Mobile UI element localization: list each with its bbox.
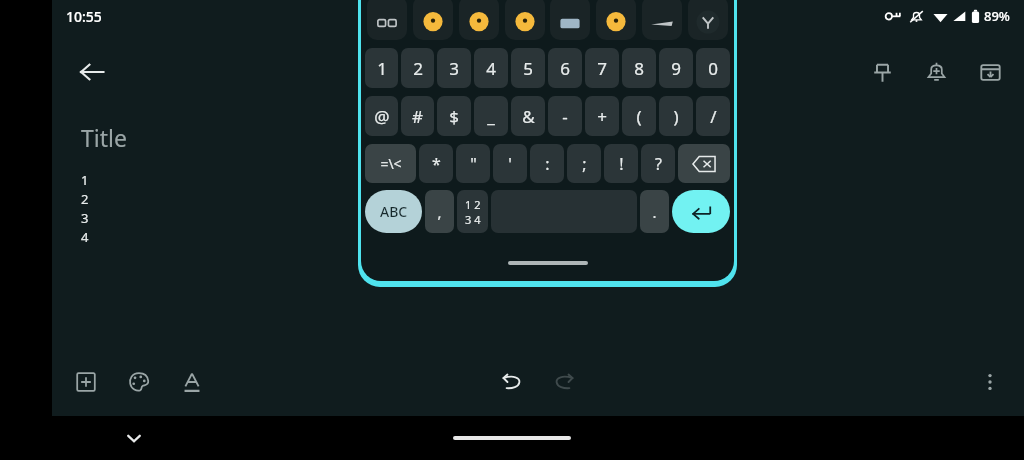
staticText: &: [522, 105, 535, 128]
button[interactable]: 6: [548, 48, 582, 88]
staticText: ;: [582, 153, 587, 175]
staticText: 5: [523, 57, 533, 80]
staticText: 8: [634, 57, 644, 80]
staticText: #: [412, 105, 423, 128]
button[interactable]: Add: [64, 360, 108, 404]
button[interactable]: Emoji suggestion: [642, 0, 682, 40]
button[interactable]: More options: [968, 360, 1012, 404]
button[interactable]: 0: [696, 48, 730, 88]
staticText: (: [636, 105, 642, 128]
button[interactable]: 1: [365, 48, 398, 88]
staticText: _: [487, 105, 495, 128]
staticText: +: [597, 105, 607, 128]
staticText: 6: [560, 57, 570, 80]
button[interactable]: 2: [401, 48, 434, 88]
staticText: 1 2: [465, 197, 481, 212]
button[interactable]: +: [585, 96, 619, 136]
button[interactable]: 3: [437, 48, 471, 88]
button[interactable]: Pin: [858, 48, 906, 96]
button[interactable]: Change color: [117, 360, 161, 404]
button[interactable]: ): [659, 96, 693, 136]
button[interactable]: _: [474, 96, 508, 136]
staticText: @: [374, 105, 390, 128]
button[interactable]: Back: [68, 48, 116, 96]
staticText: ': [508, 153, 512, 175]
staticText: 3 4: [465, 212, 481, 227]
button[interactable]: ?: [641, 144, 675, 183]
staticText: $: [449, 105, 459, 128]
button[interactable]: Add reminder: [912, 48, 960, 96]
button[interactable]: ABC: [365, 190, 422, 233]
button[interactable]: @: [365, 96, 398, 136]
button[interactable]: 4: [474, 48, 508, 88]
button[interactable]: $: [437, 96, 471, 136]
button[interactable]: Formatting: [170, 360, 214, 404]
staticText: 1: [377, 57, 387, 80]
staticText: ,: [437, 202, 442, 222]
button[interactable]: Emoji suggestion: [367, 0, 407, 40]
staticText: 2: [81, 190, 89, 208]
staticText: 89%: [984, 7, 1010, 25]
button[interactable]: Numbers: [457, 190, 488, 233]
button[interactable]: Emoji suggestion: [550, 0, 590, 40]
button[interactable]: Hide keyboard: [112, 416, 156, 460]
staticText: -: [562, 105, 568, 128]
staticText: =\<: [380, 154, 402, 173]
staticText: 3: [449, 57, 459, 80]
button[interactable]: 8: [622, 48, 656, 88]
staticText: Title: [81, 122, 127, 153]
staticText: :: [545, 153, 550, 175]
staticText: .: [652, 202, 657, 222]
button[interactable]: Emoji suggestion: [413, 0, 453, 40]
staticText: 4: [486, 57, 496, 80]
staticText: ABC: [380, 202, 408, 221]
button[interactable]: Emoji suggestion: [459, 0, 499, 40]
button[interactable]: =\<: [365, 144, 416, 183]
button[interactable]: ,: [425, 190, 454, 233]
button[interactable]: ": [456, 144, 490, 183]
staticText: 4: [81, 228, 89, 246]
button[interactable]: (: [622, 96, 656, 136]
button[interactable]: Emoji suggestion: [596, 0, 636, 40]
button[interactable]: &: [511, 96, 545, 136]
staticText: /: [710, 105, 717, 128]
button[interactable]: .: [640, 190, 669, 233]
button[interactable]: ;: [567, 144, 601, 183]
staticText: 0: [708, 57, 718, 80]
staticText: ): [673, 105, 679, 128]
staticText: 10:55: [66, 7, 102, 26]
button[interactable]: -: [548, 96, 582, 136]
button[interactable]: 5: [511, 48, 545, 88]
staticText: 7: [597, 57, 607, 80]
button[interactable]: /: [696, 96, 730, 136]
button[interactable]: !: [604, 144, 638, 183]
staticText: !: [619, 153, 624, 175]
button[interactable]: Redo: [543, 360, 587, 404]
staticText: ": [470, 153, 477, 175]
staticText: ?: [655, 153, 662, 175]
button[interactable]: 7: [585, 48, 619, 88]
button[interactable]: 9: [659, 48, 693, 88]
staticText: 3: [81, 209, 89, 227]
button[interactable]: #: [401, 96, 434, 136]
button[interactable]: *: [419, 144, 453, 183]
button[interactable]: Archive: [966, 48, 1014, 96]
staticText: 9: [671, 57, 681, 80]
button[interactable]: Emoji suggestion: [688, 0, 728, 40]
button[interactable]: Backspace: [678, 144, 730, 183]
staticText: *: [432, 153, 441, 175]
staticText: 1: [81, 171, 89, 189]
staticText: 2: [413, 57, 423, 80]
button[interactable]: Emoji suggestion: [505, 0, 545, 40]
button[interactable]: :: [530, 144, 564, 183]
button[interactable]: Enter: [672, 190, 730, 233]
button[interactable]: Undo: [489, 360, 533, 404]
button[interactable]: ': [493, 144, 527, 183]
